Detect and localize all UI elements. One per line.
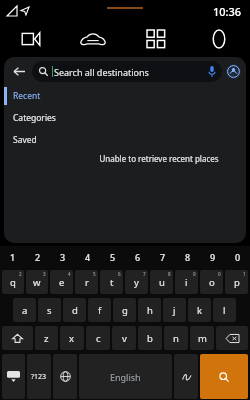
staticText: z [44,332,49,345]
button[interactable]: r [75,270,98,294]
staticText: g [122,304,128,317]
staticText: h [147,304,153,317]
button[interactable]: e [50,270,73,294]
button[interactable]: p [225,270,248,294]
button[interactable]: v [112,326,136,350]
button[interactable]: Saved [4,129,72,151]
button[interactable]: f [88,298,111,322]
staticText: 4 [85,251,91,263]
staticText: t [110,276,114,289]
button[interactable]: Apps [124,22,187,55]
staticText: Recent [13,90,41,102]
button[interactable]: o [200,270,223,294]
button[interactable]: 6 [125,246,150,268]
staticText: ?123 [31,372,47,382]
button[interactable]: Assistant [187,22,250,55]
staticText: 3 [60,251,66,263]
staticText: u [159,276,165,289]
button[interactable]: Categories [4,107,72,129]
button[interactable]: Car [62,22,124,55]
button[interactable]: Search [200,354,248,399]
staticText: a [22,304,28,317]
staticText: f [98,304,102,317]
staticText: 0 [218,271,221,277]
button[interactable]: 1 [0,246,25,268]
button[interactable]: Backspace [216,326,248,350]
button[interactable]: t [100,270,123,294]
staticText: 2 [19,271,22,277]
button[interactable]: w [26,270,48,294]
staticText: 0 [235,251,241,263]
staticText: 3 [43,271,46,277]
staticText: r [85,276,89,289]
button[interactable]: 8 [175,246,200,268]
staticText: 10:36 [213,4,242,19]
staticText: 9 [193,271,196,277]
staticText: 6 [135,251,141,263]
staticText: s [47,304,52,317]
button[interactable]: k [188,298,211,322]
button[interactable]: 2 [25,246,50,268]
staticText: English [110,371,141,383]
staticText: w [33,276,41,289]
button[interactable]: q [2,270,24,294]
staticText: 1 [243,271,246,277]
button[interactable]: 4 [75,246,100,268]
button[interactable]: i [175,270,198,294]
button[interactable]: m [190,326,214,350]
staticText: Search all destinations [54,66,149,78]
button[interactable]: a [13,298,36,322]
staticText: l [223,304,226,317]
button[interactable]: d [63,298,86,322]
staticText: d [72,304,78,317]
staticText: y [134,276,139,289]
button[interactable]: n [164,326,188,350]
button[interactable]: Back [9,61,29,81]
staticText: i [185,276,188,289]
staticText: m [198,332,207,345]
button[interactable]: h [138,298,161,322]
button[interactable]: Change language [53,354,77,399]
button[interactable]: c [86,326,110,350]
button[interactable]: j [163,298,186,322]
staticText: 7 [143,271,146,277]
button[interactable]: Hide keyboard [2,354,25,399]
staticText: b [147,332,153,345]
staticText: Saved [13,134,37,146]
button[interactable]: Shift [2,326,33,350]
button[interactable]: Video [0,22,62,55]
button[interactable]: l [213,298,236,322]
button[interactable]: x [60,326,84,350]
staticText: x [69,332,75,345]
staticText: k [197,304,203,317]
button[interactable]: 7 [150,246,175,268]
button[interactable]: Profile [226,64,241,79]
button[interactable]: 0 [225,246,250,268]
staticText: n [173,332,179,345]
button[interactable]: b [138,326,162,350]
button[interactable]: 5 [100,246,125,268]
staticText: 7 [160,251,166,263]
button[interactable]: English [79,354,172,399]
button[interactable]: s [38,298,61,322]
button[interactable]: Handwriting [174,354,198,399]
staticText: c [96,332,101,345]
staticText: 9 [210,251,216,263]
staticText: Unable to retrieve recent places [99,153,219,164]
staticText: q [10,276,16,289]
button[interactable]: g [113,298,136,322]
button[interactable]: 3 [50,246,75,268]
button[interactable]: z [35,326,58,350]
button[interactable]: u [150,270,173,294]
staticText: 5 [93,271,96,277]
button[interactable]: ?123 [27,354,51,399]
staticText: 1 [10,251,16,263]
button[interactable]: 9 [200,246,225,268]
button[interactable]: Search all destinations [32,61,222,82]
staticText: 5 [110,251,116,263]
staticText: Categories [13,112,56,124]
staticText: o [209,276,215,289]
button[interactable]: Recent [4,85,72,107]
staticText: e [59,276,65,289]
button[interactable]: y [125,270,148,294]
